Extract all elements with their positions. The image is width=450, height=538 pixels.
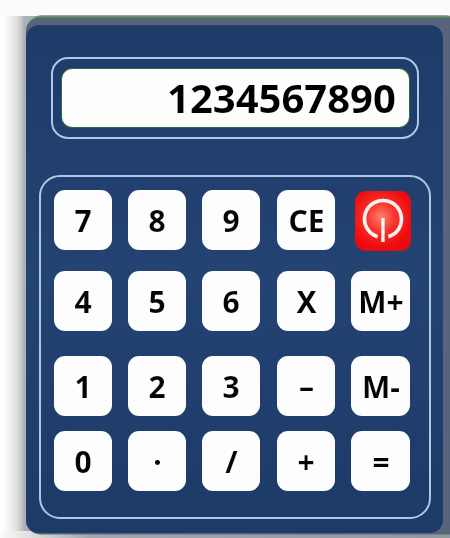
staticText: / bbox=[225, 441, 238, 482]
staticText: M- bbox=[362, 366, 400, 407]
staticText: 7 bbox=[74, 200, 92, 241]
button[interactable]: · bbox=[128, 431, 186, 491]
button[interactable]: + bbox=[277, 431, 335, 491]
staticText: – bbox=[299, 366, 314, 407]
staticText: 9 bbox=[222, 200, 240, 241]
staticText: 6 bbox=[222, 281, 240, 322]
button[interactable]: 4 bbox=[54, 271, 112, 331]
button[interactable]: 1 bbox=[54, 356, 112, 416]
staticText: 3 bbox=[222, 366, 240, 407]
button[interactable]: – bbox=[277, 356, 335, 416]
button[interactable]: 3 bbox=[202, 356, 260, 416]
button[interactable]: Power bbox=[355, 191, 411, 251]
staticText: 5 bbox=[148, 281, 166, 322]
staticText: 8 bbox=[148, 200, 166, 241]
staticText: 2 bbox=[148, 366, 166, 407]
button[interactable]: 5 bbox=[128, 271, 186, 331]
button[interactable]: X bbox=[277, 271, 335, 331]
button[interactable]: M+ bbox=[351, 271, 410, 331]
button[interactable]: 6 bbox=[202, 271, 260, 331]
staticText: CE bbox=[288, 200, 325, 241]
button[interactable]: 0 bbox=[54, 431, 112, 491]
staticText: 0 bbox=[74, 441, 92, 482]
staticText: 4 bbox=[74, 281, 92, 322]
button[interactable]: 2 bbox=[128, 356, 186, 416]
button[interactable]: M- bbox=[351, 356, 410, 416]
button[interactable]: 9 bbox=[202, 190, 260, 250]
staticText: = bbox=[372, 441, 390, 482]
button[interactable]: CE bbox=[277, 190, 335, 250]
button[interactable]: 7 bbox=[54, 190, 112, 250]
staticText: + bbox=[297, 441, 315, 482]
staticText: X bbox=[296, 281, 317, 322]
button[interactable]: = bbox=[351, 431, 410, 491]
staticText: 1234567890 bbox=[167, 70, 396, 124]
staticText: · bbox=[153, 441, 162, 482]
staticText: 1 bbox=[74, 366, 92, 407]
button[interactable]: 8 bbox=[128, 190, 186, 250]
button[interactable]: / bbox=[202, 431, 260, 491]
staticText: M+ bbox=[358, 281, 404, 322]
